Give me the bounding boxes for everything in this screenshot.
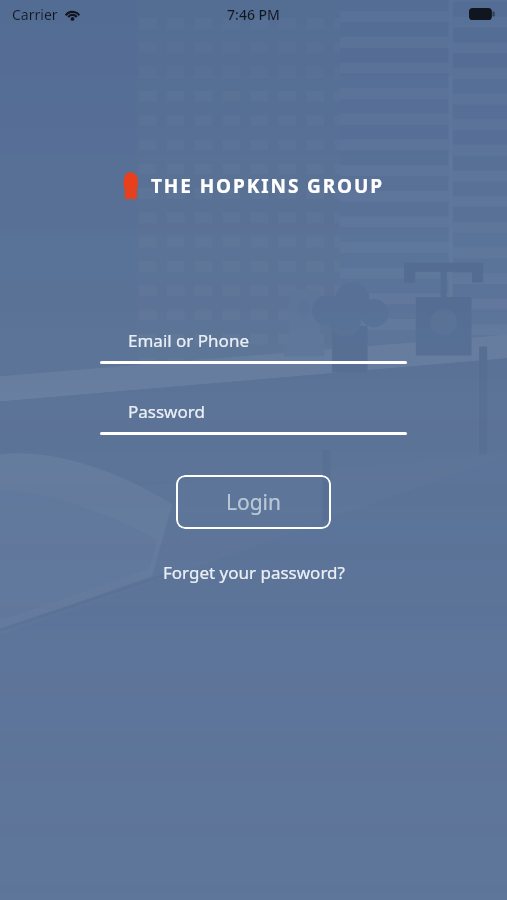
staticText: Login [226, 488, 282, 517]
button[interactable]: Forget your password? [153, 556, 355, 589]
staticText: Forget your password? [163, 561, 345, 584]
staticText: 7:46 PM [227, 5, 280, 24]
staticText: Carrier [12, 5, 58, 24]
button[interactable]: Password [100, 400, 407, 435]
other: Wi-Fi signal [64, 8, 81, 21]
other: Battery [469, 8, 495, 20]
staticText: Email or Phone [128, 329, 249, 352]
staticText: Password [128, 400, 205, 423]
button[interactable]: Login [176, 475, 331, 529]
button[interactable]: Email or Phone [100, 329, 407, 364]
staticText: THE HOPKINS GROUP [151, 173, 385, 199]
